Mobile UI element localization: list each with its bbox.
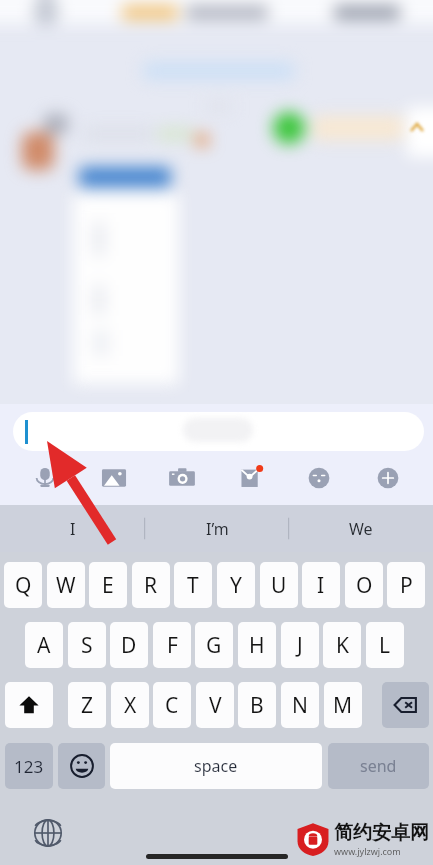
staticText: R xyxy=(144,571,158,600)
staticText: O xyxy=(356,571,373,600)
staticText: space xyxy=(194,755,238,777)
button[interactable]: Red packet xyxy=(228,455,274,501)
staticText: I xyxy=(70,518,76,540)
button[interactable]: B xyxy=(238,682,276,728)
staticText: E xyxy=(102,571,114,600)
button[interactable]: Emoji xyxy=(296,455,342,501)
staticText: A xyxy=(37,631,51,660)
staticText: D xyxy=(121,631,137,660)
button[interactable]: D xyxy=(110,622,148,668)
button[interactable]: R xyxy=(132,562,170,608)
button[interactable]: M xyxy=(324,682,362,728)
button[interactable]: N xyxy=(281,682,319,728)
staticText: V xyxy=(209,691,222,720)
button[interactable]: I’m xyxy=(145,505,289,552)
button[interactable]: I xyxy=(302,562,340,608)
staticText: C xyxy=(165,691,179,720)
button[interactable]: U xyxy=(260,562,298,608)
staticText: B xyxy=(250,691,264,720)
button[interactable]: Voice message xyxy=(22,455,68,501)
staticText: G xyxy=(206,631,222,660)
button[interactable]: A xyxy=(25,622,63,668)
button[interactable]: Emoji keyboard xyxy=(58,743,105,789)
staticText: Q xyxy=(15,571,32,600)
button[interactable]: C xyxy=(153,682,191,728)
staticText: www.jylzwj.com xyxy=(334,845,401,857)
button[interactable]: F xyxy=(153,622,191,668)
button[interactable]: We xyxy=(289,505,433,552)
staticText: X xyxy=(124,691,137,720)
staticText: N xyxy=(292,691,308,720)
button[interactable]: V xyxy=(196,682,234,728)
staticText: I’m xyxy=(206,518,229,540)
button[interactable]: K xyxy=(323,622,361,668)
button[interactable]: Switch keyboard language xyxy=(33,818,63,848)
staticText: 123 xyxy=(14,755,44,778)
button[interactable]: W xyxy=(47,562,85,608)
button[interactable]: L xyxy=(366,622,404,668)
button[interactable]: Photos xyxy=(91,455,137,501)
staticText: P xyxy=(400,571,413,600)
button[interactable]: T xyxy=(174,562,212,608)
button[interactable]: space xyxy=(110,743,322,789)
button[interactable]: 123 xyxy=(5,743,53,789)
button[interactable]: O xyxy=(345,562,383,608)
button[interactable]: S xyxy=(68,622,106,668)
staticText: 简约安卓网 xyxy=(334,821,429,845)
staticText: send xyxy=(360,755,397,777)
staticText: I xyxy=(317,571,325,600)
button[interactable]: G xyxy=(195,622,233,668)
staticText: F xyxy=(167,631,178,660)
staticText: L xyxy=(379,631,391,660)
button[interactable]: More options xyxy=(365,455,411,501)
staticText: H xyxy=(249,631,265,660)
button[interactable]: X xyxy=(111,682,149,728)
button[interactable]: I xyxy=(0,505,145,552)
staticText: K xyxy=(336,631,349,660)
button[interactable]: P xyxy=(387,562,425,608)
staticText: We xyxy=(349,518,373,540)
button[interactable]: Z xyxy=(68,682,106,728)
button[interactable]: Q xyxy=(4,562,42,608)
staticText: U xyxy=(271,571,287,600)
button[interactable]: Y xyxy=(217,562,255,608)
button[interactable]: send xyxy=(328,743,429,789)
staticText: Y xyxy=(230,571,242,600)
staticText: S xyxy=(81,631,93,660)
button[interactable]: H xyxy=(238,622,276,668)
button[interactable]: E xyxy=(89,562,127,608)
staticText: Z xyxy=(81,691,94,720)
staticText: W xyxy=(56,571,76,600)
button[interactable]: Camera xyxy=(159,455,205,501)
staticText: J xyxy=(297,631,303,660)
button[interactable]: Shift xyxy=(5,682,53,728)
button[interactable]: Backspace xyxy=(382,682,429,728)
staticText: M xyxy=(333,691,353,720)
staticText: T xyxy=(187,571,199,600)
button[interactable] xyxy=(13,412,424,451)
button[interactable]: J xyxy=(281,622,319,668)
